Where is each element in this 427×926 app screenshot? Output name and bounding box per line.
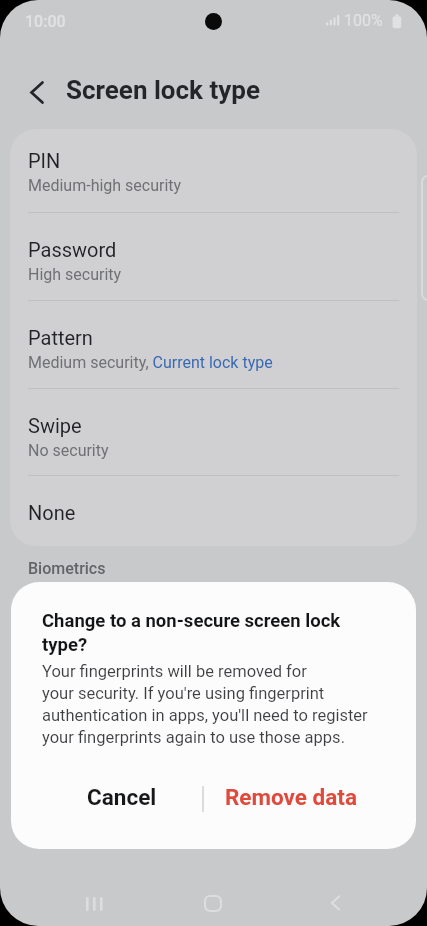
button[interactable]: Cancel: [52, 774, 192, 820]
button[interactable]: Pattern: [10, 301, 417, 388]
staticText: Change to a non-secure screen lock type?: [42, 610, 341, 656]
button[interactable]: Password: [10, 213, 417, 300]
staticText: Password: [28, 238, 117, 261]
staticText: Biometrics: [28, 559, 106, 578]
staticText: Medium security, Current lock type: [28, 353, 273, 372]
staticText: 10:00: [25, 12, 66, 31]
staticText: Remove data: [225, 784, 357, 810]
staticText: None: [28, 501, 76, 524]
staticText: Your fingerprints will be removed for yo…: [42, 662, 368, 747]
staticText: Medium-high security: [28, 176, 182, 195]
button[interactable]: [191, 881, 235, 925]
staticText: Screen lock type: [66, 75, 261, 105]
button[interactable]: Remove data: [211, 774, 371, 820]
staticText: Cancel: [87, 784, 157, 810]
staticText: Swipe: [28, 414, 82, 437]
button[interactable]: [18, 72, 58, 112]
button[interactable]: Swipe: [10, 389, 417, 475]
staticText: No security: [28, 441, 109, 460]
button[interactable]: None: [10, 476, 417, 546]
button[interactable]: [73, 882, 117, 926]
staticText: Pattern: [28, 326, 93, 349]
staticText: 100%: [344, 11, 383, 30]
staticText: High security: [28, 265, 122, 284]
staticText: PIN: [28, 149, 61, 172]
button[interactable]: PIN: [10, 129, 417, 212]
